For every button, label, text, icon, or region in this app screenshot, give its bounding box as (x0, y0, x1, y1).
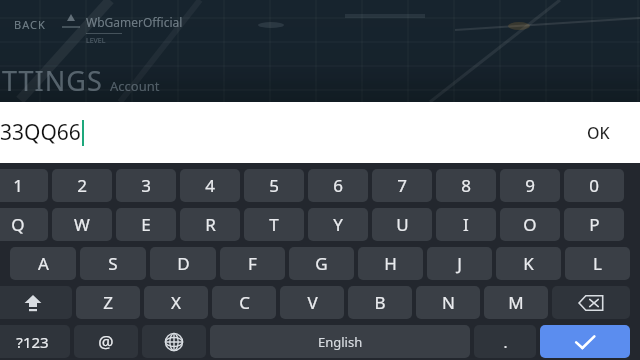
button[interactable]: W (52, 208, 112, 241)
staticText: LEVEL (86, 36, 106, 46)
staticText: T (269, 213, 279, 236)
button[interactable]: H (358, 247, 423, 280)
staticText: O (523, 213, 537, 236)
staticText: 9 (525, 174, 535, 197)
staticText: 0 (589, 174, 599, 197)
button[interactable]: G (289, 247, 354, 280)
staticText: A (38, 252, 49, 275)
staticText: ETTINGS (0, 62, 103, 99)
staticText: 2 (77, 174, 87, 197)
staticText: S (108, 252, 118, 275)
staticText: N (442, 291, 455, 314)
staticText: C (239, 291, 250, 314)
staticText: L (593, 252, 602, 275)
button[interactable]: ?123 (0, 325, 70, 358)
button[interactable]: Enter (540, 325, 630, 358)
button[interactable]: U (372, 208, 432, 241)
button[interactable]: 4 (180, 169, 240, 202)
staticText: @ (98, 330, 114, 353)
button[interactable]: @ (74, 325, 138, 358)
staticText: Account (110, 77, 160, 95)
button[interactable]: 2 (52, 169, 112, 202)
button[interactable]: Z (76, 286, 140, 319)
button[interactable]: I (436, 208, 496, 241)
staticText: OK (587, 122, 610, 144)
button[interactable]: 7 (372, 169, 432, 202)
button[interactable]: K (496, 247, 561, 280)
button[interactable]: D (150, 247, 216, 280)
button[interactable]: T (244, 208, 304, 241)
staticText: . (503, 332, 508, 352)
staticText: D (177, 252, 190, 275)
staticText: G (315, 252, 328, 275)
button[interactable]: Backspace (552, 286, 630, 319)
button[interactable]: . (474, 325, 536, 358)
button[interactable]: R (180, 208, 240, 241)
button[interactable]: B (348, 286, 412, 319)
staticText: Y (333, 213, 343, 236)
staticText: 3 (141, 174, 151, 197)
staticText: W (74, 213, 90, 236)
button[interactable]: 5 (244, 169, 304, 202)
button[interactable]: C (212, 286, 276, 319)
staticText: BACK (14, 17, 46, 32)
staticText: M (508, 291, 524, 314)
staticText: R (205, 213, 216, 236)
staticText: 5 (269, 174, 279, 197)
staticText: J (457, 252, 462, 275)
staticText: 6 (333, 174, 343, 197)
button[interactable]: F (220, 247, 285, 280)
button[interactable]: 8 (436, 169, 496, 202)
staticText: 4 (205, 174, 215, 197)
button[interactable]: P (564, 208, 624, 241)
staticText: 33QQ66 (0, 118, 81, 147)
button[interactable]: 1 (0, 169, 48, 202)
staticText: 8 (461, 174, 471, 197)
button[interactable]: N (416, 286, 480, 319)
staticText: English (318, 333, 363, 351)
button[interactable]: Y (308, 208, 368, 241)
button[interactable]: Shift (0, 286, 72, 319)
button[interactable]: M (484, 286, 548, 319)
button[interactable]: X (144, 286, 208, 319)
button[interactable]: Change language (142, 325, 206, 358)
staticText: F (248, 252, 257, 275)
staticText: V (307, 291, 318, 314)
button[interactable]: BACK (10, 14, 50, 35)
button[interactable]: L (565, 247, 630, 280)
button[interactable]: 9 (500, 169, 560, 202)
button[interactable]: Q (0, 208, 48, 241)
button[interactable]: English (210, 325, 470, 358)
button[interactable]: 6 (308, 169, 368, 202)
button[interactable]: 3 (116, 169, 176, 202)
button[interactable]: 0 (564, 169, 624, 202)
button[interactable]: O (500, 208, 560, 241)
staticText: B (374, 291, 386, 314)
staticText: E (141, 213, 151, 236)
button[interactable]: E (116, 208, 176, 241)
staticText: X (171, 291, 181, 314)
staticText: ?123 (16, 332, 49, 352)
staticText: H (384, 252, 397, 275)
staticText: I (463, 213, 469, 236)
button[interactable]: S (80, 247, 146, 280)
staticText: Z (103, 291, 113, 314)
button[interactable]: V (280, 286, 344, 319)
staticText: P (589, 213, 600, 236)
staticText: Q (11, 213, 25, 236)
button[interactable]: OK (556, 102, 640, 163)
button[interactable]: A (10, 247, 76, 280)
staticText: U (396, 213, 409, 236)
staticText: 1 (13, 174, 23, 197)
staticText: K (523, 252, 534, 275)
staticText: WbGamerOfficial (86, 14, 183, 30)
button[interactable]: J (427, 247, 492, 280)
button[interactable]: 33QQ66 (0, 102, 640, 163)
staticText: 7 (397, 174, 407, 197)
